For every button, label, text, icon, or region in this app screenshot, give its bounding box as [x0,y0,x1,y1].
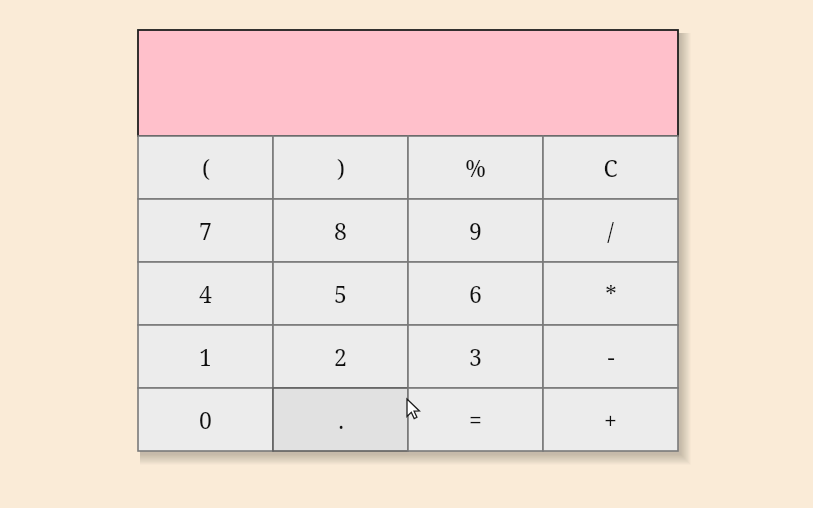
staticText: 3 [469,341,482,372]
staticText: 8 [334,215,347,246]
staticText: 4 [199,278,212,309]
button[interactable]: = [408,388,543,451]
staticText: ( [202,152,210,183]
button[interactable]: . [273,388,408,451]
button[interactable]: Calculator display [138,30,678,136]
button[interactable]: + [543,388,678,451]
staticText: 6 [469,278,482,309]
button[interactable]: 4 [138,262,273,325]
button[interactable]: 2 [273,325,408,388]
staticText: 1 [199,341,212,372]
staticText: / [607,215,614,246]
button[interactable]: 3 [408,325,543,388]
staticText: 0 [199,404,212,435]
staticText: = [469,404,482,435]
button[interactable]: ) [273,136,408,199]
button[interactable]: % [408,136,543,199]
button[interactable]: 6 [408,262,543,325]
staticText: 9 [469,215,482,246]
button[interactable]: 8 [273,199,408,262]
staticText: ) [337,152,345,183]
button[interactable]: * [543,262,678,325]
staticText: 5 [334,278,347,309]
staticText: - [607,341,615,372]
staticText: % [465,152,486,183]
button[interactable]: / [543,199,678,262]
button[interactable]: C [543,136,678,199]
button[interactable]: 5 [273,262,408,325]
staticText: * [605,278,617,309]
staticText: 7 [199,215,212,246]
button[interactable]: 9 [408,199,543,262]
button[interactable]: ( [138,136,273,199]
staticText: 2 [334,341,347,372]
button[interactable]: - [543,325,678,388]
button[interactable]: 1 [138,325,273,388]
button[interactable]: 0 [138,388,273,451]
staticText: C [603,152,618,183]
staticText: + [604,404,617,435]
staticText: . [338,404,344,435]
button[interactable]: 7 [138,199,273,262]
